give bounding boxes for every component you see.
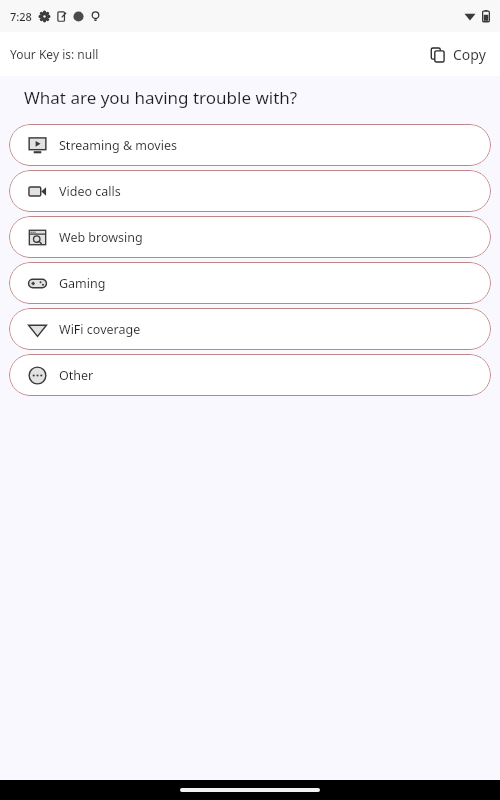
button[interactable]: Copy: [426, 41, 490, 68]
button[interactable]: Video calls: [9, 170, 491, 212]
button[interactable]: Web browsing: [9, 216, 491, 258]
button[interactable]: Streaming & movies: [9, 124, 491, 166]
staticText: Streaming & movies: [59, 137, 177, 154]
staticText: Copy: [453, 45, 486, 64]
button[interactable]: Other: [9, 354, 491, 396]
staticText: Other: [59, 367, 94, 384]
staticText: What are you having trouble with?: [24, 86, 298, 109]
staticText: Web browsing: [59, 229, 143, 246]
staticText: Video calls: [59, 183, 121, 200]
button[interactable]: Gaming: [9, 262, 491, 304]
button[interactable]: WiFi coverage: [9, 308, 491, 350]
staticText: WiFi coverage: [59, 321, 141, 338]
staticText: Gaming: [59, 275, 106, 292]
staticText: 7:28: [10, 9, 32, 24]
staticText: Your Key is: null: [10, 46, 99, 62]
